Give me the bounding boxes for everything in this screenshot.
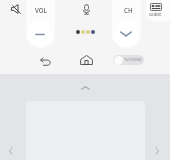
button[interactable]: Back — [35, 52, 55, 70]
button[interactable]: Next — [152, 145, 162, 157]
button[interactable]: Colour button — [86, 30, 90, 34]
staticText: TV/HDMI — [124, 57, 142, 63]
button[interactable]: Volume down — [27, 21, 53, 47]
button[interactable]: CH — [117, 1, 139, 19]
staticText: GUIDE — [149, 12, 162, 17]
button[interactable]: Voice search — [76, 0, 96, 18]
button[interactable]: GUIDE — [145, 1, 166, 19]
button[interactable]: Colour button — [76, 30, 80, 34]
button[interactable]: Colour button — [91, 30, 95, 34]
button[interactable]: Channel down — [113, 21, 139, 47]
button[interactable]: Previous — [6, 145, 16, 157]
button[interactable]: Expand — [75, 83, 95, 92]
button[interactable]: Home — [76, 51, 96, 69]
button[interactable]: Colour button — [81, 30, 85, 34]
button[interactable]: Source — [113, 55, 144, 65]
staticText: CH — [124, 6, 133, 14]
staticText: VOL — [35, 6, 47, 14]
button[interactable]: Mute — [5, 0, 26, 18]
button[interactable]: VOL — [29, 1, 53, 19]
